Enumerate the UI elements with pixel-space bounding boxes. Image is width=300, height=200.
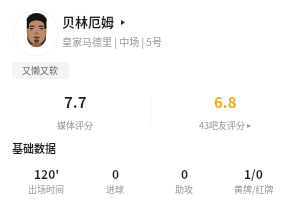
staticText: 进球 [106,183,125,196]
staticText: 0 [112,165,120,182]
staticText: 皇家马德里 | 中场 | 5号 [62,34,162,48]
staticText: 媒体评分 [57,119,94,132]
button[interactable]: 120' [12,165,81,196]
button[interactable]: 6.8 [150,88,300,133]
staticText: 120' [34,165,60,182]
staticText: 助攻 [175,183,194,196]
button[interactable]: 0 [150,165,219,196]
staticText: 43吧友评分 [199,119,245,132]
staticText: 贝林厄姆 [62,12,115,31]
staticText: 基础数据 [12,140,56,156]
button[interactable]: 1/0 [219,165,288,196]
staticText: 6.8 [214,91,237,113]
button[interactable]: 0 [81,165,150,196]
staticText: 1/0 [244,165,263,182]
button[interactable]: Player photo [13,10,59,56]
staticText: 又懒又软 [22,64,59,77]
button[interactable]: 又懒又软 [12,62,69,79]
staticText: 出场时间 [28,183,65,196]
button[interactable]: 7.7 [0,88,150,133]
staticText: 7.7 [64,91,87,113]
staticText: 0 [181,165,189,182]
staticText: 黄牌/红牌 [234,183,274,196]
button[interactable]: 贝林厄姆 [62,12,125,31]
